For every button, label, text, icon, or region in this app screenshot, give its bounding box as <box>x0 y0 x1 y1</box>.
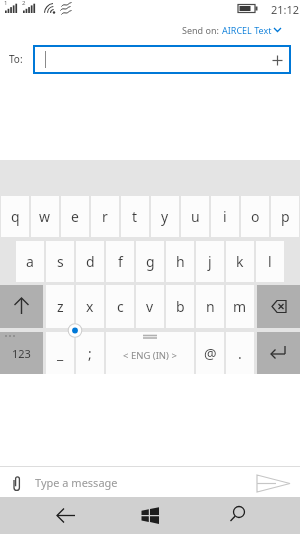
staticText: k <box>236 252 244 271</box>
staticText: r <box>102 207 108 226</box>
staticText: To: <box>9 52 23 66</box>
button[interactable]: . <box>226 332 254 374</box>
button[interactable]: a <box>16 241 44 282</box>
button[interactable]: < ENG (IN) > <box>106 332 194 374</box>
button[interactable]: n <box>196 285 224 328</box>
button[interactable] <box>120 497 180 534</box>
button[interactable] <box>33 45 291 74</box>
staticText: z <box>57 297 64 316</box>
staticText: 21:12 <box>271 2 300 17</box>
staticText: Send on: <box>182 24 219 36</box>
staticText: a <box>26 252 34 271</box>
button[interactable]: k <box>226 241 254 282</box>
button[interactable]: g <box>136 241 164 282</box>
staticText: d <box>86 252 95 271</box>
button[interactable] <box>0 467 300 497</box>
staticText: _ <box>57 344 64 363</box>
staticText: @ <box>204 344 217 363</box>
button[interactable]: 123 <box>0 332 43 374</box>
staticText: l <box>268 252 272 271</box>
button[interactable]: d <box>76 241 104 282</box>
button[interactable] <box>203 497 263 534</box>
staticText: b <box>176 297 185 316</box>
staticText: 123 <box>12 346 31 361</box>
staticText: f <box>118 252 123 271</box>
button[interactable]: u <box>181 196 209 237</box>
staticText: i <box>223 207 227 226</box>
button[interactable] <box>0 285 43 328</box>
button[interactable]: @ <box>196 332 224 374</box>
staticText: e <box>71 207 79 226</box>
button[interactable]: s <box>46 241 74 282</box>
button[interactable]: m <box>226 285 254 328</box>
button[interactable]: l <box>256 241 284 282</box>
staticText: j <box>208 252 212 271</box>
staticText: s <box>57 252 64 271</box>
staticText: q <box>11 207 20 226</box>
button[interactable] <box>250 468 300 496</box>
button[interactable]: w <box>31 196 59 237</box>
button[interactable] <box>4 468 30 496</box>
staticText: ; <box>88 344 92 363</box>
staticText: o <box>251 207 260 226</box>
button[interactable]: t <box>121 196 149 237</box>
staticText: p <box>281 207 290 226</box>
button[interactable] <box>36 497 96 534</box>
button[interactable]: _ <box>46 332 74 374</box>
staticText: 1 <box>4 0 8 7</box>
staticText: h <box>176 252 185 271</box>
staticText: u <box>191 207 200 226</box>
staticText: t <box>132 207 138 226</box>
button[interactable]: i <box>211 196 239 237</box>
staticText: x <box>86 297 94 316</box>
button[interactable]: q <box>1 196 29 237</box>
button[interactable] <box>257 285 300 328</box>
staticText: . <box>238 344 242 363</box>
button[interactable]: p <box>271 196 299 237</box>
staticText: AIRCEL Text <box>222 24 272 36</box>
staticText: y <box>161 207 169 226</box>
button[interactable]: f <box>106 241 134 282</box>
button[interactable]: ; <box>76 332 104 374</box>
staticText: Type a message <box>35 475 118 490</box>
staticText: c <box>117 297 124 316</box>
button[interactable]: e <box>61 196 89 237</box>
staticText: w <box>39 207 51 226</box>
staticText: v <box>146 297 154 316</box>
button[interactable]: r <box>91 196 119 237</box>
staticText: n <box>206 297 215 316</box>
button[interactable]: b <box>166 285 194 328</box>
button[interactable]: x <box>76 285 104 328</box>
button[interactable]: c <box>106 285 134 328</box>
staticText: 2 <box>22 0 26 7</box>
staticText: < ENG (IN) > <box>123 349 177 362</box>
button[interactable]: AIRCEL Text <box>222 24 272 36</box>
button[interactable] <box>257 332 300 374</box>
staticText: g <box>146 252 155 271</box>
button[interactable]: v <box>136 285 164 328</box>
button[interactable]: z <box>46 285 74 328</box>
button[interactable]: j <box>196 241 224 282</box>
button[interactable]: h <box>166 241 194 282</box>
button[interactable]: y <box>151 196 179 237</box>
button[interactable]: o <box>241 196 269 237</box>
staticText: m <box>233 297 247 316</box>
